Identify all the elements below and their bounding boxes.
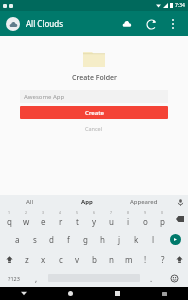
- button[interactable]: c: [52, 249, 69, 269]
- staticText: z: [25, 254, 29, 265]
- staticText: c: [59, 254, 63, 265]
- staticText: Cancel: [85, 125, 103, 132]
- button[interactable]: Shift: [0, 249, 18, 269]
- button[interactable]: 2: [18, 209, 35, 229]
- button[interactable]: 3: [35, 209, 52, 229]
- button[interactable]: 7: [103, 209, 120, 229]
- staticText: !: [144, 254, 147, 265]
- button[interactable]: App: [58, 195, 115, 209]
- staticText: t: [76, 216, 79, 227]
- staticText: 1: [8, 210, 11, 215]
- staticText: r: [59, 216, 63, 227]
- staticText: w: [23, 216, 30, 227]
- staticText: b: [92, 254, 97, 265]
- button[interactable]: k: [128, 229, 145, 249]
- staticText: j: [118, 234, 121, 245]
- button[interactable]: 5: [69, 209, 86, 229]
- button[interactable]: m: [120, 249, 137, 269]
- button[interactable]: ,: [27, 269, 46, 287]
- button[interactable]: ?: [154, 249, 171, 269]
- staticText: Appeared: [130, 198, 158, 206]
- button[interactable]: Appeared: [115, 195, 172, 209]
- staticText: s: [33, 234, 37, 245]
- button[interactable]: .: [142, 269, 161, 287]
- staticText: 0: [161, 210, 164, 215]
- staticText: x: [41, 254, 46, 265]
- button[interactable]: Go: [162, 229, 188, 249]
- button[interactable]: Home: [47, 287, 94, 300]
- button[interactable]: Hide keyboard: [0, 287, 47, 300]
- staticText: g: [83, 234, 88, 245]
- staticText: k: [134, 234, 139, 245]
- button[interactable]: 4: [52, 209, 69, 229]
- staticText: 6: [93, 210, 96, 215]
- button[interactable]: g: [77, 229, 94, 249]
- staticText: u: [109, 216, 114, 227]
- button[interactable]: Recent apps: [94, 287, 141, 300]
- button[interactable]: Backspace: [171, 209, 188, 229]
- button[interactable]: Refresh: [142, 15, 160, 33]
- staticText: Create: [85, 109, 104, 117]
- staticText: 5: [76, 210, 79, 215]
- button[interactable]: Cloud: [118, 15, 136, 33]
- staticText: Awesome App: [24, 93, 65, 101]
- button[interactable]: Shift: [171, 249, 188, 269]
- button[interactable]: 0: [154, 209, 171, 229]
- staticText: 4: [59, 210, 62, 215]
- button[interactable]: z: [18, 249, 35, 269]
- staticText: 3: [42, 210, 45, 215]
- button[interactable]: ?123: [0, 269, 27, 287]
- staticText: All: [26, 198, 33, 206]
- staticText: .: [150, 273, 153, 284]
- button[interactable]: b: [86, 249, 103, 269]
- staticText: n: [109, 254, 114, 265]
- button[interactable]: All: [0, 195, 58, 209]
- button[interactable]: a: [9, 229, 26, 249]
- staticText: p: [160, 216, 165, 227]
- staticText: 2: [25, 210, 28, 215]
- button[interactable]: h: [94, 229, 111, 249]
- button[interactable]: !: [137, 249, 154, 269]
- staticText: e: [41, 216, 46, 227]
- button[interactable]: Voice input: [172, 195, 188, 209]
- button[interactable]: Emoji: [161, 269, 188, 287]
- staticText: 7: [110, 210, 113, 215]
- staticText: 7:34: [175, 2, 185, 9]
- button[interactable]: j: [111, 229, 128, 249]
- staticText: ,: [35, 273, 38, 284]
- staticText: o: [143, 216, 148, 227]
- staticText: l: [152, 234, 155, 245]
- staticText: h: [100, 234, 105, 245]
- staticText: 8: [127, 210, 130, 215]
- staticText: m: [125, 254, 133, 265]
- button[interactable]: v: [69, 249, 86, 269]
- staticText: q: [7, 216, 12, 227]
- button[interactable]: d: [43, 229, 60, 249]
- button[interactable]: x: [35, 249, 52, 269]
- button[interactable]: 1: [0, 209, 18, 229]
- button[interactable]: 8: [120, 209, 137, 229]
- button[interactable]: 6: [86, 209, 103, 229]
- staticText: f: [67, 234, 70, 245]
- button[interactable]: Awesome App: [20, 90, 168, 103]
- staticText: App: [81, 198, 93, 206]
- staticText: a: [15, 234, 20, 245]
- staticText: ?123: [8, 275, 20, 282]
- staticText: Create Folder: [72, 73, 117, 83]
- button[interactable]: l: [145, 229, 162, 249]
- button[interactable]: More options: [164, 15, 182, 33]
- staticText: y: [92, 216, 97, 227]
- button[interactable]: Cancel: [75, 123, 113, 134]
- button[interactable]: Switch keyboard: [141, 287, 188, 300]
- button[interactable]: Account: [6, 17, 20, 31]
- button[interactable]: f: [60, 229, 77, 249]
- button[interactable]: n: [103, 249, 120, 269]
- button[interactable]: s: [26, 229, 43, 249]
- button[interactable]: Create: [20, 106, 168, 119]
- staticText: d: [49, 234, 54, 245]
- staticText: v: [75, 254, 80, 265]
- staticText: i: [127, 216, 130, 227]
- button[interactable]: 9: [137, 209, 154, 229]
- staticText: 9: [144, 210, 147, 215]
